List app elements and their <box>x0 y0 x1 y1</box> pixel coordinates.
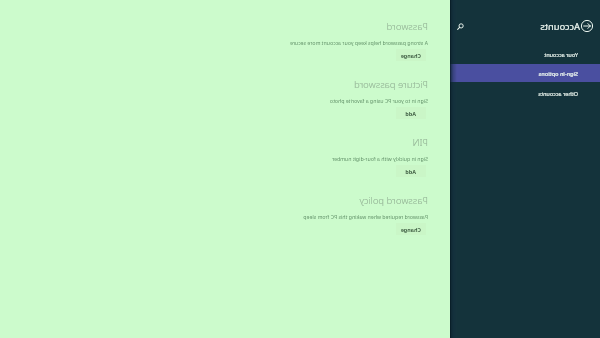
button[interactable]: Change <box>396 223 426 235</box>
button[interactable]: Search <box>455 20 467 32</box>
button[interactable]: Sign-in options <box>450 64 600 82</box>
staticText: A strong password helps keep your accoun… <box>290 39 428 46</box>
staticText: Add <box>405 168 416 175</box>
button[interactable]: Back <box>579 18 595 34</box>
button[interactable]: Add <box>396 165 426 177</box>
staticText: Accounts <box>540 20 580 33</box>
button[interactable]: Your account <box>450 45 600 63</box>
staticText: Password <box>386 20 428 33</box>
staticText: Sign-in options <box>538 70 578 77</box>
staticText: Password required when waking this PC fr… <box>303 213 428 220</box>
staticText: Change <box>400 226 421 233</box>
button[interactable]: Add <box>396 107 426 119</box>
staticText: Other accounts <box>538 90 578 97</box>
button[interactable]: Change <box>396 49 426 61</box>
staticText: PIN <box>412 136 428 149</box>
staticText: Password policy <box>359 194 428 207</box>
staticText: Add <box>405 110 416 117</box>
button[interactable]: Other accounts <box>450 84 600 102</box>
staticText: Sign in to your PC using a favorite phot… <box>329 97 428 104</box>
staticText: Change <box>400 52 421 59</box>
staticText: Sign in quickly with a four-digit number <box>332 155 428 162</box>
staticText: Your account <box>544 51 578 58</box>
staticText: Picture password <box>354 78 428 91</box>
